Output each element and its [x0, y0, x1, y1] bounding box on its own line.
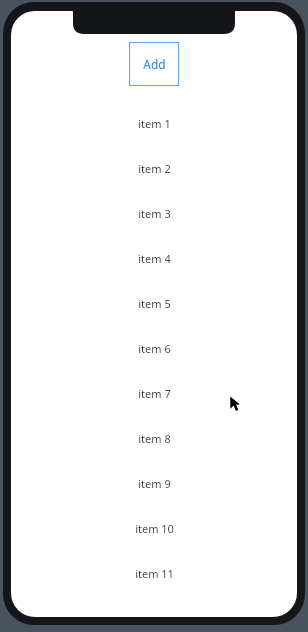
staticText: item 9: [138, 476, 171, 491]
button[interactable]: item 3: [11, 191, 297, 236]
button[interactable]: item 9: [11, 461, 297, 506]
button[interactable]: item 8: [11, 416, 297, 461]
staticText: item 1: [138, 116, 171, 131]
button[interactable]: item 1: [11, 101, 297, 146]
staticText: Add: [143, 56, 166, 72]
staticText: item 5: [138, 296, 171, 311]
staticText: item 10: [135, 521, 174, 536]
button[interactable]: item 10: [11, 506, 297, 551]
other: Pointer: [229, 396, 245, 412]
button[interactable]: item 6: [11, 326, 297, 371]
staticText: item 11: [135, 566, 174, 581]
staticText: item 2: [138, 161, 171, 176]
staticText: item 7: [138, 386, 171, 401]
button[interactable]: item 2: [11, 146, 297, 191]
button[interactable]: item 11: [11, 551, 297, 596]
staticText: item 4: [138, 251, 171, 266]
staticText: item 8: [138, 431, 171, 446]
button[interactable]: item 4: [11, 236, 297, 281]
button[interactable]: Add: [129, 42, 179, 86]
button[interactable]: item 7: [11, 371, 297, 416]
button[interactable]: item 5: [11, 281, 297, 326]
staticText: item 3: [138, 206, 171, 221]
staticText: item 6: [138, 341, 171, 356]
